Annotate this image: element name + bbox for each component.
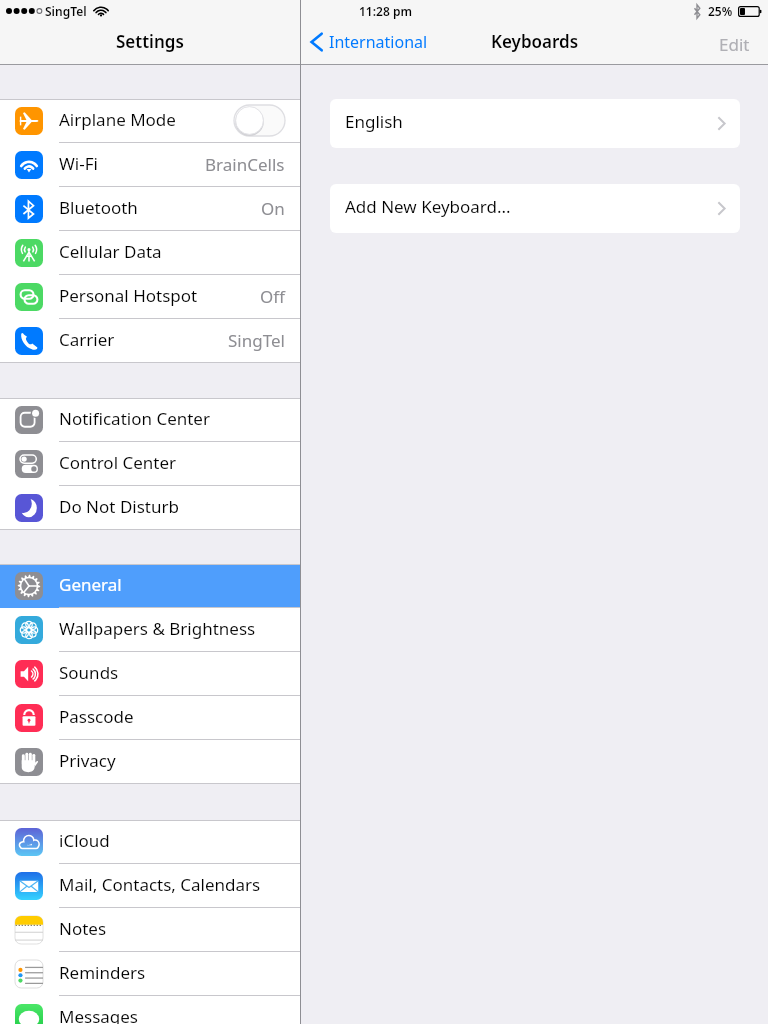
staticText: Control Center [59,451,177,474]
staticText: Notification Center [59,407,210,430]
staticText: Do Not Disturb [59,495,179,518]
staticText: SingTel [228,329,285,352]
button[interactable]: Add New Keyboard... [330,184,740,233]
staticText: English [345,110,403,133]
staticText: 25% [708,3,733,19]
button[interactable]: Notification Center [0,398,300,442]
staticText: Settings [116,30,184,53]
staticText: SingTel [45,3,87,19]
staticText: Mail, Contacts, Calendars [59,873,261,896]
staticText: Personal Hotspot [59,284,198,307]
button[interactable]: General [0,564,300,608]
staticText: Sounds [59,661,119,684]
staticText: Airplane Mode [59,108,176,131]
staticText: Keyboards [491,30,579,53]
staticText: Messages [59,1005,139,1024]
button[interactable]: Control Center [0,442,300,486]
button[interactable]: English [330,99,740,148]
button[interactable]: Sounds [0,652,300,696]
button[interactable]: Cellular Data [0,231,300,275]
staticText: On [261,197,285,220]
button[interactable]: Wallpapers & Brightness [0,608,300,652]
button[interactable]: Mail, Contacts, Calendars [0,864,300,908]
staticText: International [329,31,428,53]
button[interactable]: Reminders [0,952,300,996]
button[interactable]: Personal Hotspot [0,275,300,319]
button[interactable]: Back [310,31,428,53]
staticText: Off [260,285,285,308]
staticText: Reminders [59,961,146,984]
staticText: Edit [719,33,750,56]
button[interactable]: Privacy [0,740,300,784]
staticText: Add New Keyboard... [345,195,511,218]
staticText: Privacy [59,749,116,772]
staticText: Passcode [59,705,134,728]
button[interactable]: Carrier [0,319,300,363]
staticText: Wallpapers & Brightness [59,617,256,640]
staticText: General [59,573,122,596]
button[interactable]: iCloud [0,820,300,864]
staticText: Carrier [59,328,115,351]
button[interactable]: Messages [0,996,300,1024]
button[interactable]: Airplane Mode [0,99,300,143]
staticText: Notes [59,917,107,940]
button[interactable]: Passcode [0,696,300,740]
button[interactable]: Airplane Mode toggle, off [234,105,285,136]
button[interactable]: Wi-Fi [0,143,300,187]
other: Back [310,31,323,53]
button[interactable]: Notes [0,908,300,952]
button[interactable]: Bluetooth [0,187,300,231]
staticText: iCloud [59,829,110,852]
staticText: BrainCells [205,153,285,176]
staticText: 11:28 pm [359,3,412,19]
staticText: Cellular Data [59,240,162,263]
button[interactable]: Edit [719,33,750,56]
button[interactable]: Do Not Disturb [0,486,300,530]
staticText: Bluetooth [59,196,138,219]
staticText: Wi-Fi [59,152,98,175]
